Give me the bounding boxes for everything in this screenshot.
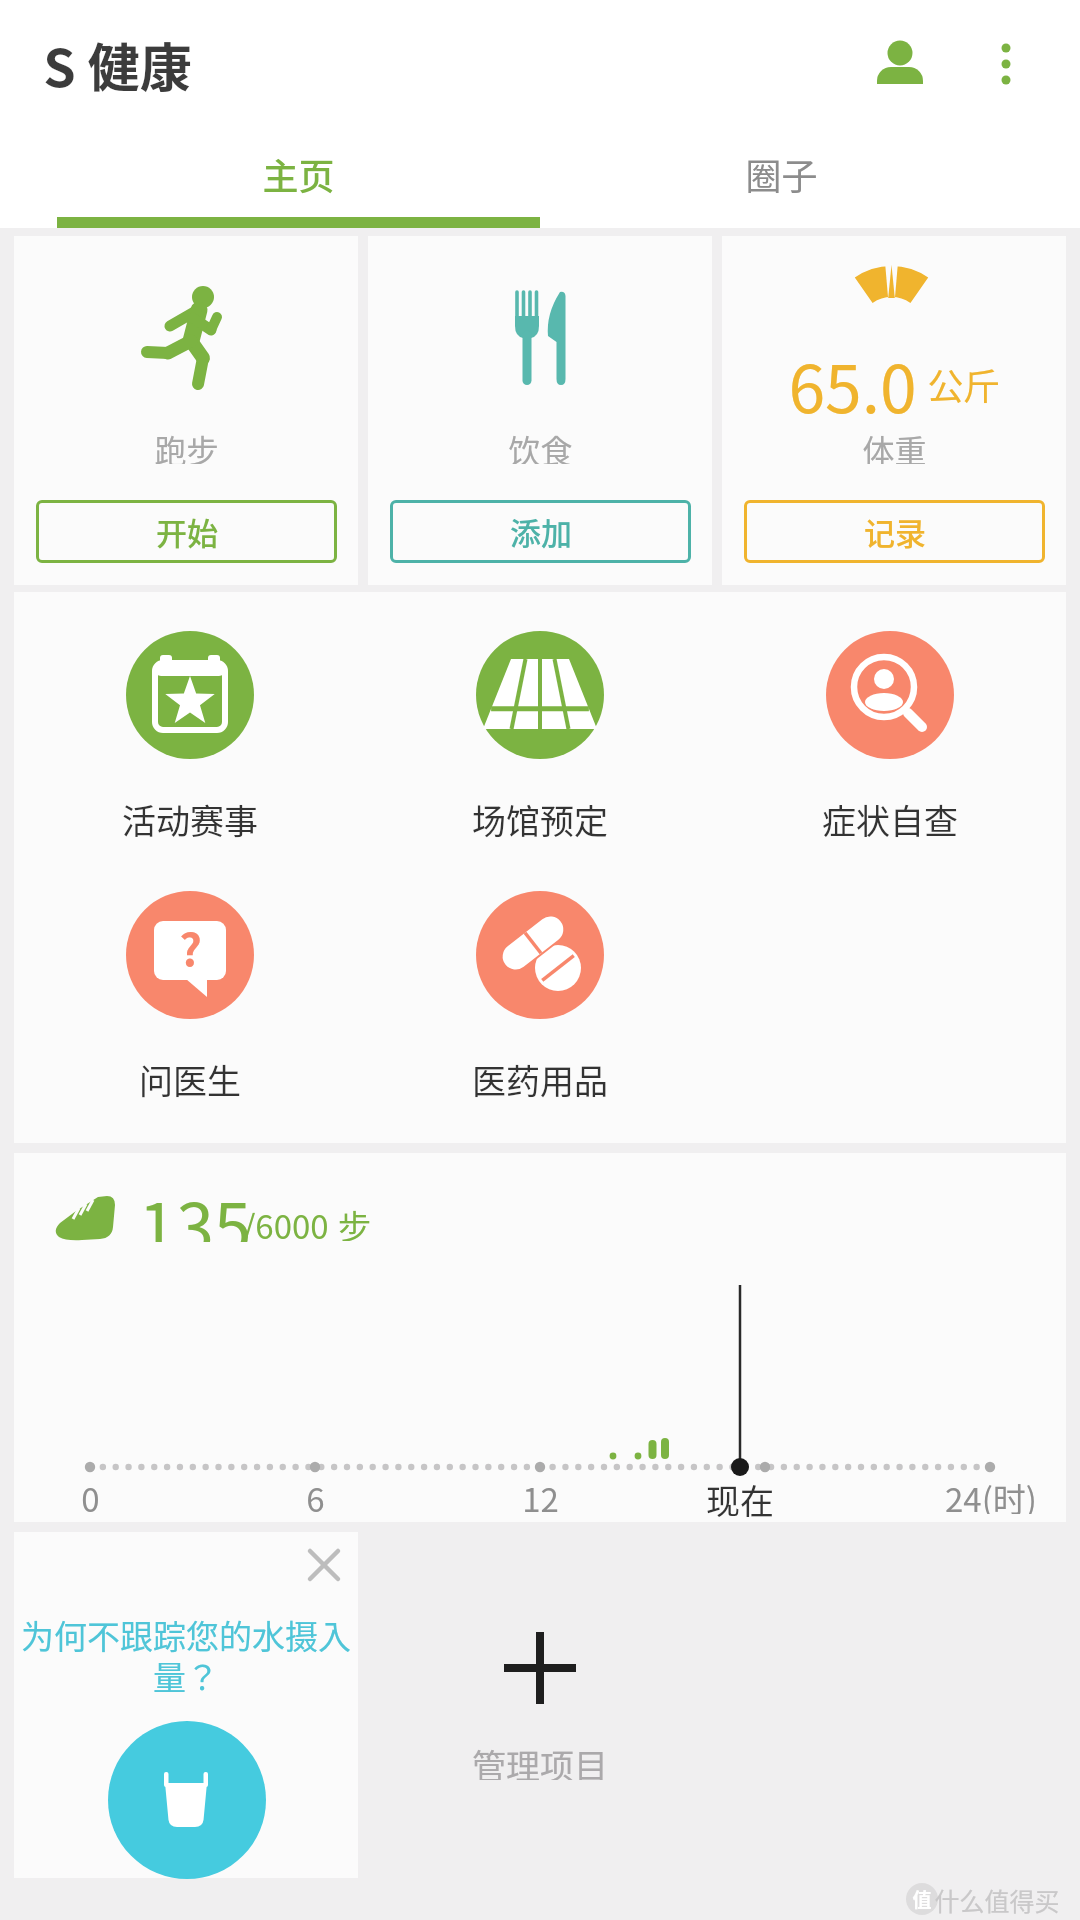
button[interactable]: 主页 [57,130,540,217]
button[interactable] [994,40,1018,88]
button[interactable] [309,1550,339,1580]
button[interactable]: 为何不跟踪您的水摄入 量？ [14,1532,358,1878]
staticText: 跑步 [154,426,219,464]
button[interactable]: 医药用品 [430,891,650,1104]
button[interactable]: ? [80,891,300,1104]
button[interactable]: 场馆预定 [430,631,650,844]
button[interactable]: 开始 [36,500,337,563]
staticText: 24(时) [945,1474,1037,1514]
staticText: 步 [338,1201,371,1241]
button[interactable]: 圈子 [540,130,1023,217]
staticText: 0 [81,1474,100,1514]
staticText: 65.0 [788,336,917,416]
staticText: 135 [138,1174,252,1242]
staticText: 活动赛事 [122,795,258,844]
staticText: 场馆预定 [472,795,608,844]
button[interactable]: 症状自查 [780,631,1000,844]
staticText: 12 [522,1474,559,1514]
staticText: 公斤 [927,358,1000,410]
staticText: 记录 [864,509,926,554]
staticText: 主页 [262,148,335,200]
staticText: 症状自查 [822,795,958,844]
button[interactable] [108,1721,266,1879]
button[interactable] [876,28,924,84]
button[interactable]: 饮食 [368,236,712,585]
staticText: 管理项目 [472,1740,608,1780]
staticText: 添加 [510,509,572,554]
button[interactable]: 添加 [390,500,691,563]
button[interactable]: 跑步 [14,236,358,585]
button[interactable]: 管理项目 [368,1532,712,1878]
button[interactable]: 记录 [744,500,1045,563]
staticText: 饮食 [508,426,573,464]
staticText: 什么值得买 [934,1882,1060,1918]
staticText: 问医生 [139,1055,241,1104]
staticText: S 健康 [43,27,192,97]
button[interactable]: 活动赛事 [80,631,300,844]
staticText: ? [179,915,202,979]
staticText: 为何不跟踪您的水摄入 量？ [21,1611,351,1699]
staticText: 开始 [156,509,218,554]
staticText: 体重 [862,426,927,464]
staticText: 现在 [706,1475,774,1517]
staticText: 圈子 [745,148,818,200]
staticText: 医药用品 [472,1055,608,1104]
button[interactable]: 135 [14,1153,1066,1522]
staticText: 值 [912,1885,932,1913]
staticText: 6 [306,1474,325,1514]
button[interactable]: 65.0 [722,236,1066,585]
staticText: /6000 [242,1201,329,1241]
